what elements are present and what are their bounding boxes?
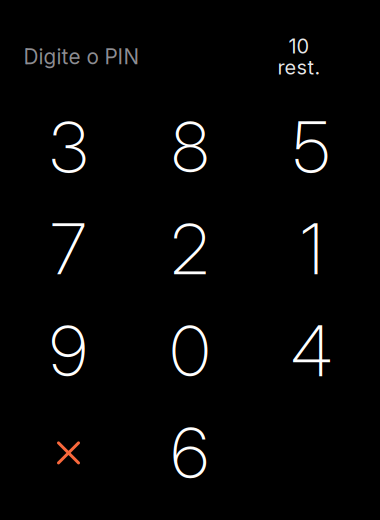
staticText: rest. (277, 55, 320, 79)
button[interactable]: 1 (256, 201, 366, 297)
staticText: 9 (49, 309, 87, 393)
button[interactable]: 9 (13, 303, 123, 399)
staticText: 6 (171, 411, 209, 495)
staticText: 1 (300, 207, 322, 291)
button[interactable]: 7 (13, 201, 123, 297)
staticText: 0 (170, 309, 210, 393)
staticText: 4 (291, 309, 332, 393)
staticText: 10 (288, 34, 309, 58)
staticText: Digite o PIN (23, 44, 139, 69)
button[interactable]: 0 (135, 303, 245, 399)
staticText: 3 (49, 105, 87, 189)
button[interactable]: 2 (135, 201, 245, 297)
button[interactable]: 5 (256, 99, 366, 195)
button[interactable]: 4 (256, 303, 366, 399)
staticText: 8 (171, 105, 208, 189)
button[interactable]: Delete (13, 405, 123, 501)
button[interactable]: 8 (135, 99, 245, 195)
staticText: 2 (171, 207, 209, 291)
button[interactable]: 3 (13, 99, 123, 195)
staticText: 7 (50, 207, 86, 291)
button[interactable]: 6 (135, 405, 245, 501)
staticText: 5 (293, 105, 330, 189)
